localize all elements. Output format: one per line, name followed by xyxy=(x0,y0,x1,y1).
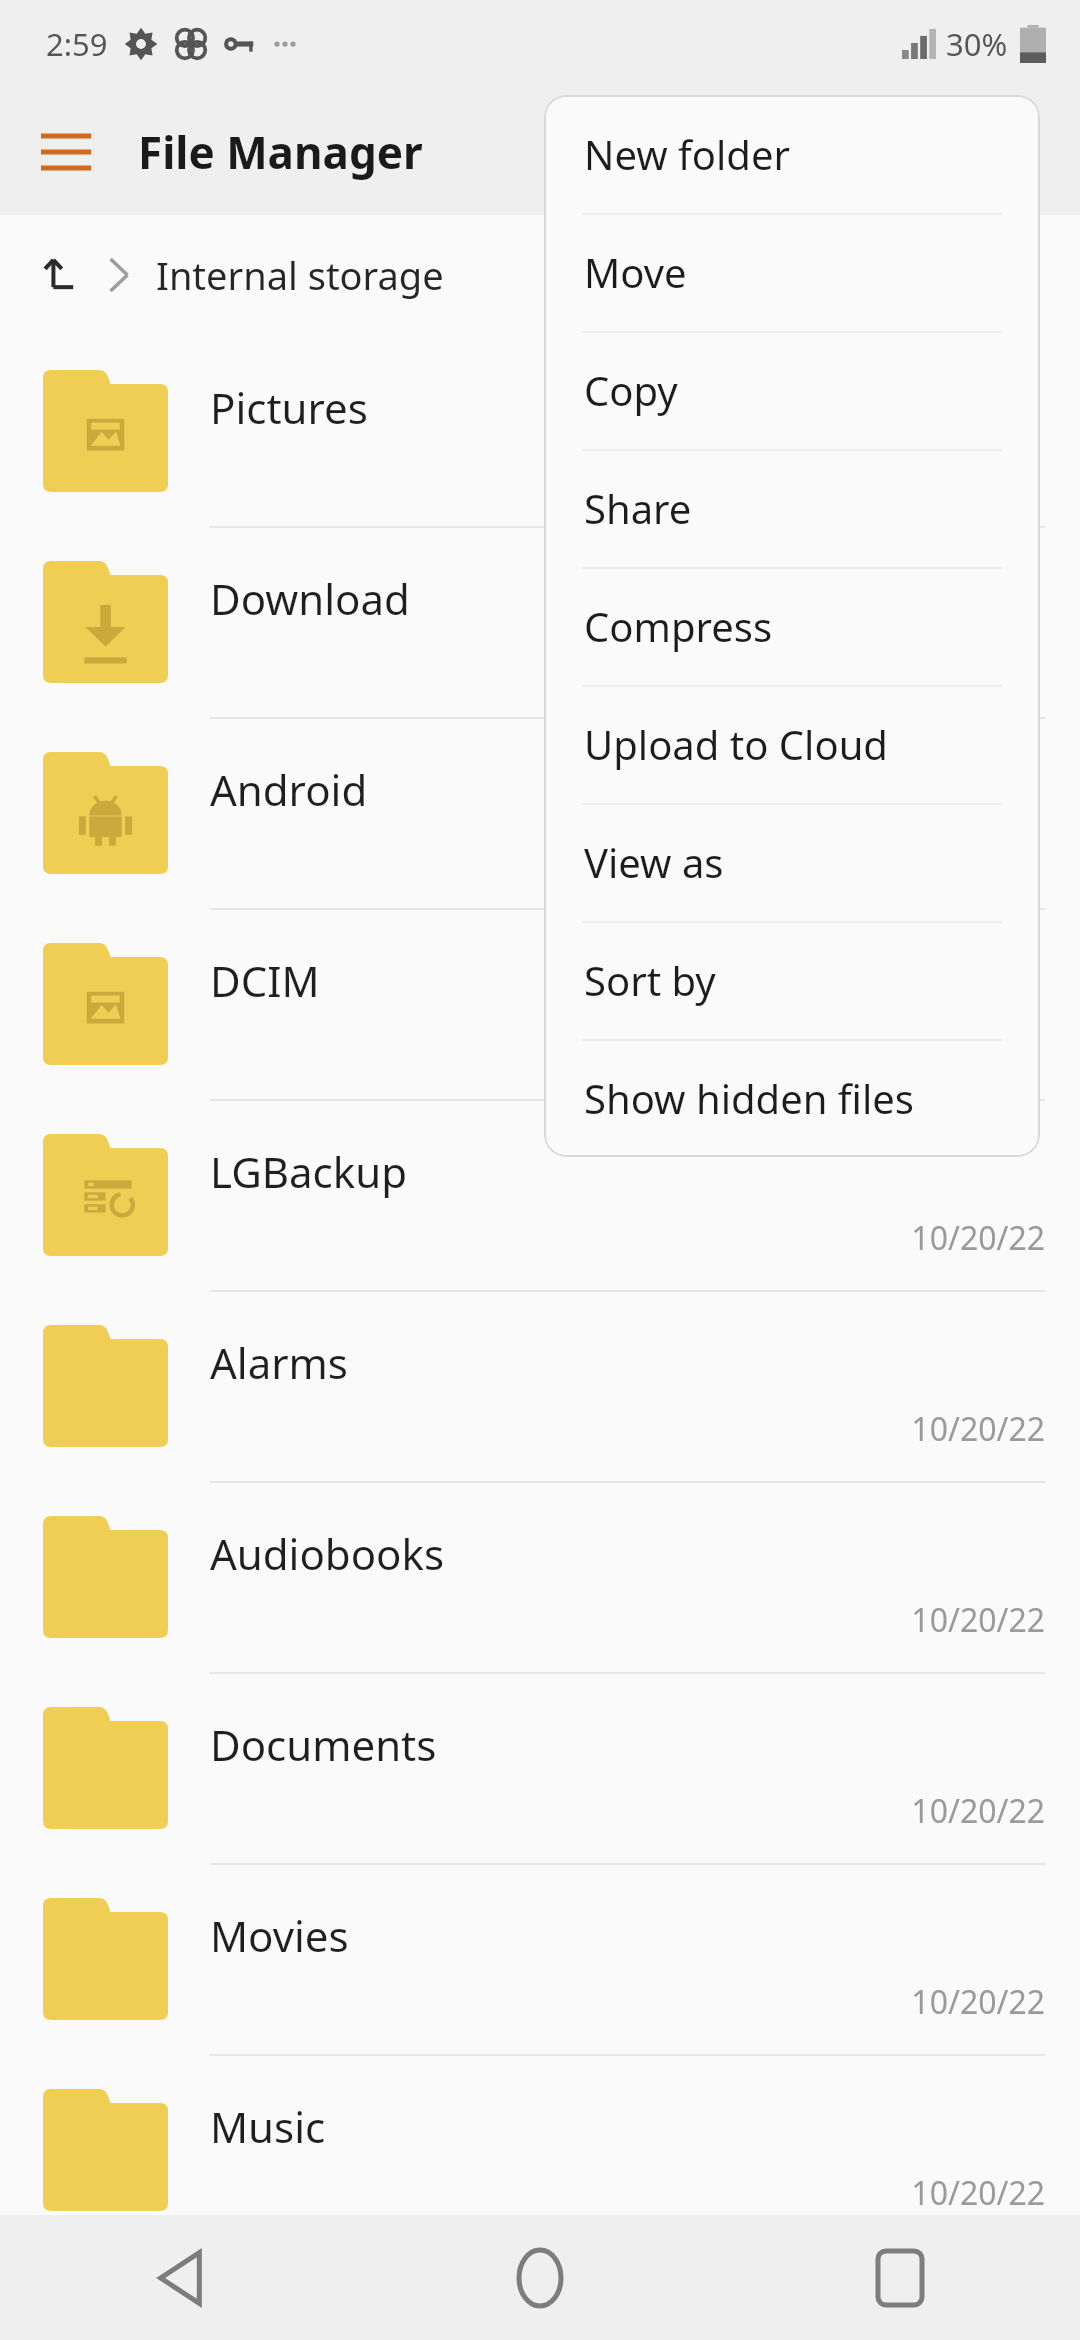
button[interactable]: Alarms xyxy=(0,1290,1080,1481)
staticText: Alarms xyxy=(210,1334,348,1391)
staticText: Compress xyxy=(584,599,773,653)
staticText: 2:59 xyxy=(46,23,108,65)
button[interactable]: Open navigation drawer xyxy=(36,122,96,182)
staticText: 10/20/22 xyxy=(911,1598,1045,1642)
staticText: Music xyxy=(210,2098,326,2155)
staticText: File Manager xyxy=(138,122,423,182)
button[interactable]: Documents xyxy=(0,1672,1080,1863)
staticText: Documents xyxy=(210,1716,437,1773)
button[interactable]: Upload to Cloud xyxy=(544,685,1040,803)
button[interactable]: Copy xyxy=(544,331,1040,449)
button[interactable]: Back xyxy=(0,2215,360,2340)
button[interactable]: DCIM xyxy=(0,908,1080,1099)
button[interactable]: Android xyxy=(0,717,1080,908)
button[interactable]: Up one level xyxy=(30,244,92,306)
staticText: Android xyxy=(210,761,368,818)
staticText: DCIM xyxy=(210,952,320,1009)
button[interactable]: Movies xyxy=(0,1863,1080,2054)
staticText: Upload to Cloud xyxy=(584,717,888,771)
staticText: Movies xyxy=(210,1907,349,1964)
staticText: 30% xyxy=(946,23,1008,65)
button[interactable]: Internal storage xyxy=(156,249,444,301)
staticText: Move xyxy=(584,245,687,299)
button[interactable]: View as xyxy=(544,803,1040,921)
staticText: 10/20/22 xyxy=(911,1789,1045,1833)
staticText: Copy xyxy=(584,363,678,417)
button[interactable]: Move xyxy=(544,213,1040,331)
button[interactable]: Download xyxy=(0,526,1080,717)
button[interactable]: LGBackup xyxy=(0,1099,1080,1290)
staticText: Sort by xyxy=(584,953,716,1007)
staticText: 10/20/22 xyxy=(911,1216,1045,1260)
staticText: Audiobooks xyxy=(210,1525,445,1582)
button[interactable]: Sort by xyxy=(544,921,1040,1039)
button[interactable]: Share xyxy=(544,449,1040,567)
staticText: New folder xyxy=(584,127,790,181)
staticText: Pictures xyxy=(210,379,368,436)
button[interactable]: Music xyxy=(0,2054,1080,2245)
staticText: View as xyxy=(584,835,724,889)
staticText: Download xyxy=(210,570,410,627)
staticText: 10/20/22 xyxy=(911,1980,1045,2024)
staticText: 10/20/22 xyxy=(911,2171,1045,2215)
button[interactable]: Home xyxy=(360,2215,720,2340)
button[interactable]: Compress xyxy=(544,567,1040,685)
button[interactable]: Pictures xyxy=(0,335,1080,526)
staticText: Share xyxy=(584,481,692,535)
button[interactable]: Show hidden files xyxy=(544,1039,1040,1157)
button[interactable]: Audiobooks xyxy=(0,1481,1080,1672)
staticText: LGBackup xyxy=(210,1143,407,1200)
staticText: 10/20/22 xyxy=(911,1407,1045,1451)
button[interactable]: New folder xyxy=(544,95,1040,213)
button[interactable]: Recent apps xyxy=(720,2215,1080,2340)
staticText: Show hidden files xyxy=(584,1071,914,1125)
